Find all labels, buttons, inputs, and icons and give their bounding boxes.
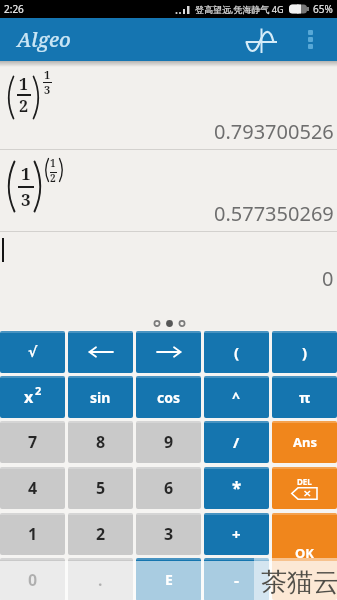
button[interactable]: OK [272,513,337,600]
staticText: sin [90,388,111,407]
staticText: OK [295,544,314,562]
staticText: 3 [21,188,31,211]
button[interactable]: x [0,376,65,418]
button[interactable] [68,331,133,373]
staticText: - [234,569,240,591]
button[interactable]: 7 [0,421,65,463]
staticText: 0.577350269 [214,200,334,227]
button[interactable]: 5 [68,467,133,509]
staticText: 1 [28,523,38,545]
staticText: Algeo [17,26,71,53]
staticText: x [24,386,34,408]
staticText: 1 [21,162,31,185]
button[interactable]: π [272,376,337,418]
button[interactable]: / [204,421,269,463]
staticText: ) [302,342,308,362]
staticText: 2 [50,171,56,185]
staticText: 8 [96,431,106,453]
staticText: ( [234,342,240,362]
button[interactable]: 4 [0,467,65,509]
staticText: 7 [28,431,38,453]
staticText: 4 [28,477,38,499]
staticText: . [98,569,103,591]
staticText: 3 [44,82,51,97]
button[interactable]: . [68,558,133,600]
staticText: 6 [164,477,174,499]
button[interactable]: 9 [136,421,201,463]
button[interactable]: ) [272,331,337,373]
staticText: 2:26 [4,2,24,16]
button[interactable] [136,331,201,373]
staticText: / [233,432,240,452]
button[interactable]: - [204,558,269,600]
staticText: 0 [28,569,38,591]
button[interactable]: 3 [136,513,201,555]
button[interactable]: 8 [68,421,133,463]
staticText: 9 [164,431,174,453]
staticText: 1 [44,67,51,82]
button[interactable]: sin [68,376,133,418]
button[interactable]: ^ [204,376,269,418]
button[interactable]: 6 [136,467,201,509]
staticText: * [232,477,242,500]
staticText: ^ [232,388,241,407]
staticText: 2 [35,383,42,398]
staticText: π [299,387,311,407]
button[interactable]: * [204,467,269,509]
button[interactable]: 1 [0,513,65,555]
staticText: 1 [19,73,29,95]
staticText: 登高望远,凭海静气 4G [195,3,284,15]
staticText: 5 [96,477,106,499]
staticText: Ans [293,433,317,451]
button[interactable]: √ [0,331,65,373]
staticText: cos [157,388,181,407]
button[interactable]: + [204,513,269,555]
staticText: 茶猫云 [261,566,337,599]
staticText: 2 [19,95,29,117]
button[interactable]: E [136,558,201,600]
staticText: 0.793700526 [214,118,334,145]
button[interactable]: DEL [272,467,337,509]
button[interactable]: ( [204,331,269,373]
staticText: + [232,524,241,544]
staticText: √ [28,344,38,360]
button[interactable]: 0 [0,558,65,600]
staticText: 2 [96,523,106,545]
button[interactable] [240,22,282,56]
staticText: 0 [322,265,334,292]
staticText: E [165,570,173,589]
button[interactable]: cos [136,376,201,418]
staticText: DEL [297,476,312,487]
button[interactable]: 2 [68,513,133,555]
button[interactable]: Ans [272,421,337,463]
button[interactable] [293,18,327,61]
staticText: 65% [313,2,333,16]
staticText: 1 [50,156,56,170]
staticText: 3 [164,523,174,545]
